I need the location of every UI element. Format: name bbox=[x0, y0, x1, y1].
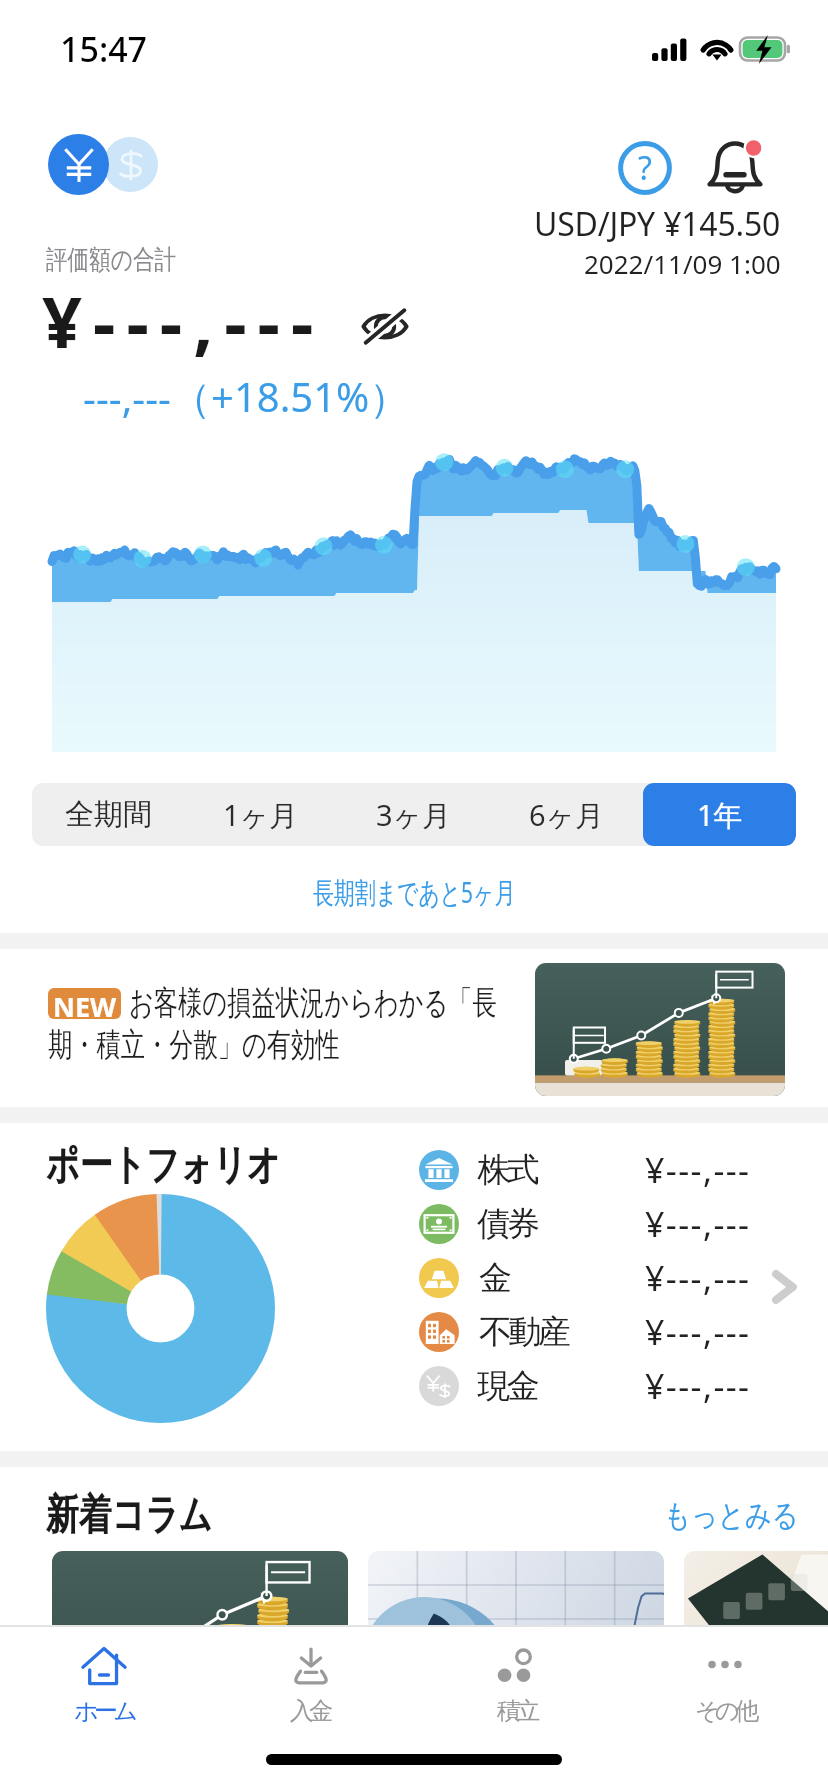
staticText: 金 bbox=[479, 1257, 509, 1299]
button[interactable]: 長期割まであと5ヶ月 bbox=[313, 872, 515, 912]
staticText: 3ヶ月 bbox=[376, 795, 452, 835]
button[interactable]: もっとみる bbox=[664, 1496, 799, 1535]
staticText: 1年 bbox=[697, 795, 743, 835]
button[interactable]: 1ヶ月 bbox=[184, 783, 337, 846]
button[interactable] bbox=[368, 1551, 664, 1721]
button[interactable] bbox=[684, 1551, 828, 1721]
button[interactable]: NEW bbox=[0, 949, 828, 1107]
staticText: NEW bbox=[53, 988, 117, 1019]
staticText: 入金 bbox=[292, 1696, 331, 1726]
staticText: USD/JPY ¥145.50 bbox=[534, 202, 781, 246]
button[interactable]: 3ヶ月 bbox=[337, 783, 490, 846]
staticText: 株式 bbox=[479, 1149, 538, 1191]
button[interactable]: Hide amount bbox=[356, 301, 414, 351]
button[interactable]: Accumulate bbox=[414, 1627, 621, 1737]
staticText: ¥---,--- bbox=[645, 1255, 751, 1301]
staticText: 現金 bbox=[479, 1365, 538, 1407]
staticText: ポートフォリオ bbox=[46, 1139, 280, 1192]
staticText: 新着コラム bbox=[46, 1489, 212, 1542]
staticText: ホーム bbox=[74, 1696, 134, 1726]
staticText: 6ヶ月 bbox=[529, 795, 605, 835]
staticText: 15:47 bbox=[60, 26, 148, 72]
staticText: ¥---,--- bbox=[42, 273, 325, 368]
staticText: ¥---,--- bbox=[645, 1147, 751, 1193]
button[interactable] bbox=[48, 134, 161, 195]
button[interactable]: 全期間 bbox=[32, 783, 184, 846]
staticText: お客様の損益状況からわかる「長 bbox=[129, 982, 497, 1024]
button[interactable]: Help bbox=[614, 137, 676, 199]
button[interactable]: ポートフォリオ bbox=[0, 1123, 828, 1451]
staticText: ¥---,--- bbox=[645, 1363, 751, 1409]
staticText: 評価額の合計 bbox=[46, 243, 176, 277]
staticText: 債券 bbox=[479, 1203, 538, 1245]
staticText: ---,--- bbox=[83, 370, 171, 424]
staticText: ¥---,--- bbox=[645, 1309, 751, 1355]
button[interactable] bbox=[52, 1551, 348, 1721]
button[interactable]: More bbox=[621, 1627, 828, 1737]
staticText: ? bbox=[638, 146, 652, 190]
button[interactable]: More portfolio bbox=[762, 1265, 806, 1309]
button[interactable]: Home bbox=[0, 1627, 207, 1737]
staticText: 全期間 bbox=[65, 796, 152, 833]
staticText: 1ヶ月 bbox=[223, 795, 299, 835]
staticText: その他 bbox=[695, 1696, 755, 1726]
button[interactable]: Notifications bbox=[702, 134, 768, 200]
staticText: 期・積立・分散」の有効性 bbox=[48, 1024, 340, 1066]
staticText: 2022/11/09 1:00 bbox=[584, 246, 781, 281]
staticText: （+18.51%） bbox=[171, 369, 410, 424]
button[interactable]: Deposit bbox=[207, 1627, 414, 1737]
staticText: 積立 bbox=[499, 1696, 538, 1726]
staticText: ¥---,--- bbox=[645, 1201, 751, 1247]
button[interactable]: 1年 bbox=[643, 783, 796, 846]
button[interactable]: 6ヶ月 bbox=[490, 783, 643, 846]
staticText: 不動産 bbox=[479, 1311, 568, 1353]
